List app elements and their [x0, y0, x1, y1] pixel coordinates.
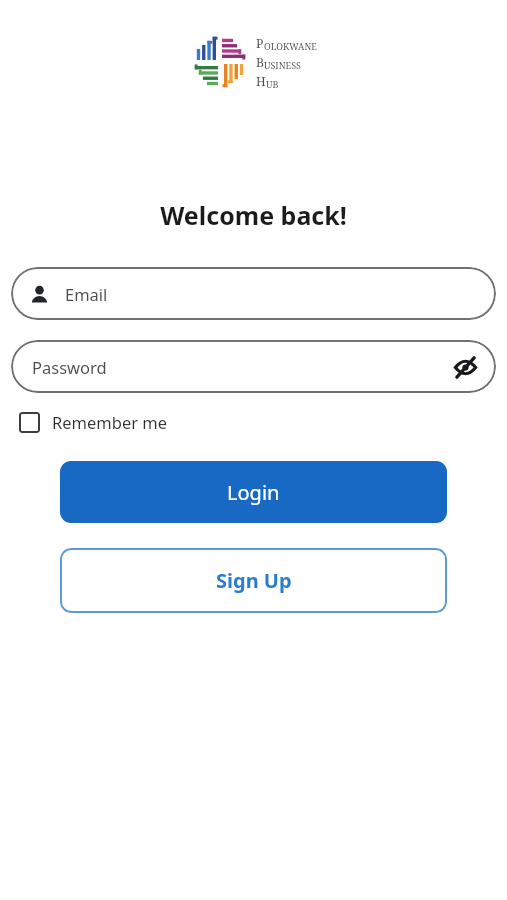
button[interactable]: Email: [11, 267, 496, 320]
staticText: Password: [32, 356, 107, 378]
staticText: B: [256, 54, 264, 71]
staticText: H: [256, 73, 266, 90]
staticText: USINESS: [264, 59, 301, 71]
button[interactable]: Sign Up: [60, 548, 447, 613]
staticText: Welcome back!: [160, 198, 347, 232]
staticText: Login: [227, 479, 280, 506]
staticText: Sign Up: [216, 567, 292, 594]
button[interactable]: Show password: [448, 350, 482, 384]
staticText: P: [256, 35, 264, 52]
staticText: Email: [65, 283, 108, 305]
staticText: UB: [266, 78, 279, 90]
staticText: Remember me: [52, 411, 168, 433]
button[interactable]: Login: [60, 461, 447, 523]
button[interactable]: Password: [11, 340, 496, 393]
staticText: OLOKWANE: [264, 40, 317, 52]
button[interactable]: Remember me: [19, 411, 168, 433]
